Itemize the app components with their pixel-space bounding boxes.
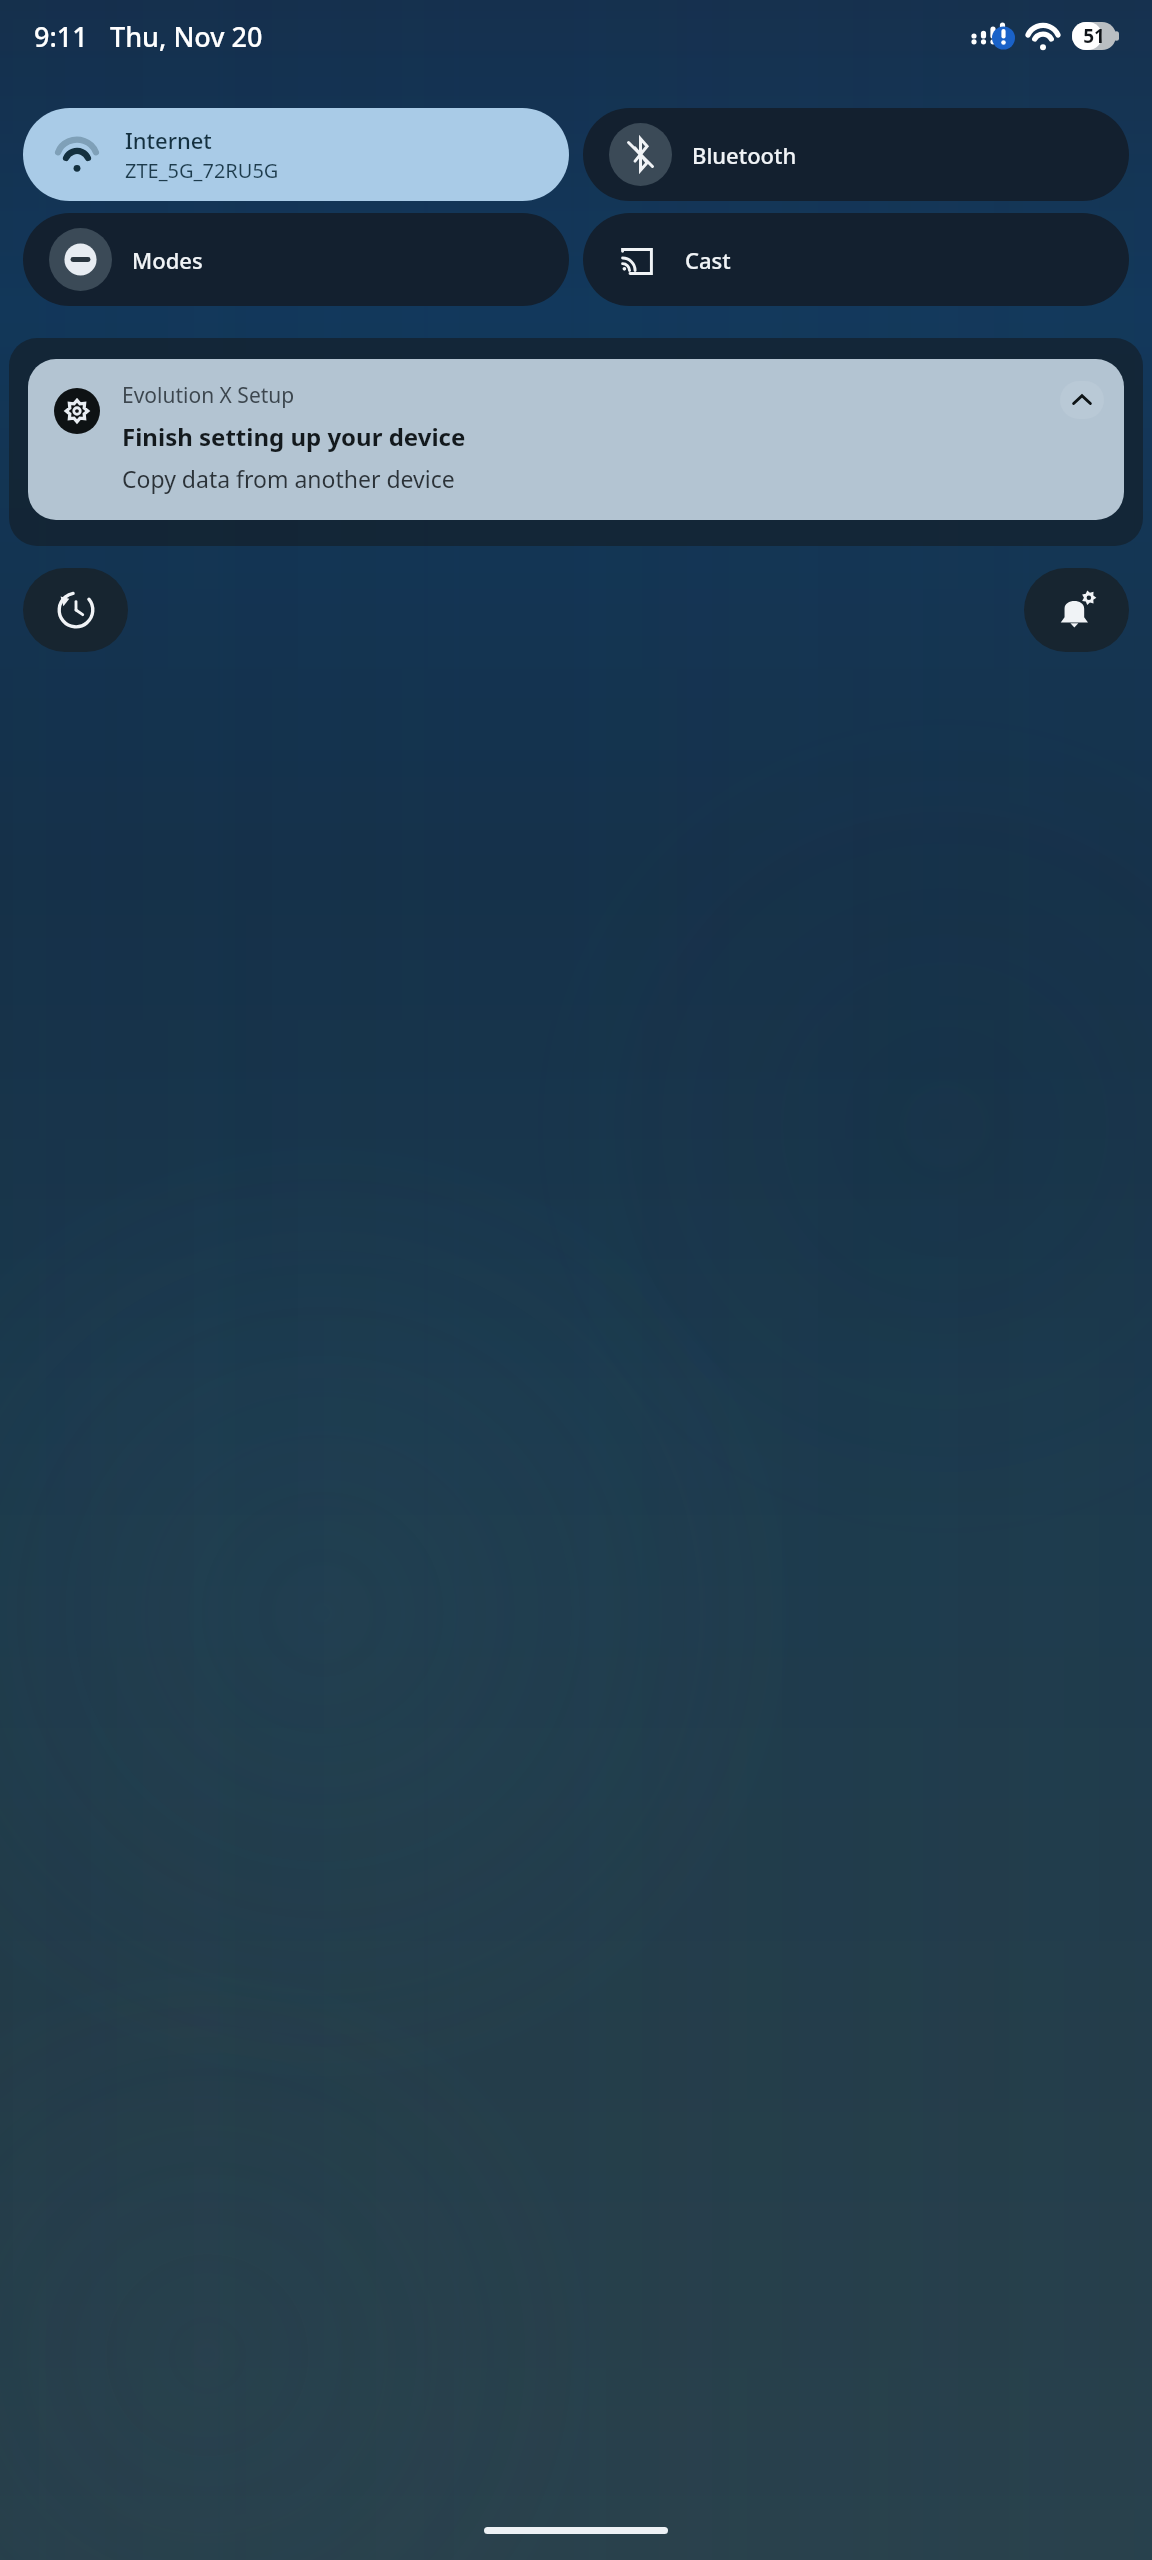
staticText: Thu, Nov 20 [110,18,263,55]
button[interactable]: Notification history [23,568,128,652]
button[interactable]: Bluetooth [583,108,1129,201]
button[interactable]: Collapse notification [1060,381,1104,419]
button[interactable]: Internet [23,108,569,201]
button[interactable]: Evolution X Setup [28,359,1124,520]
staticText: 9:11 [34,18,88,55]
staticText: Modes [132,245,203,275]
button[interactable]: Notification settings [1024,568,1129,652]
staticText: 51 [1072,23,1116,49]
staticText: Internet [125,125,212,155]
button[interactable]: Modes [23,213,569,306]
staticText: Copy data from another device [122,463,455,494]
staticText: Finish setting up your device [122,420,466,453]
button[interactable]: Cast [583,213,1129,306]
staticText: ZTE_5G_72RU5G [125,157,279,184]
staticText: Bluetooth [692,140,797,170]
staticText: Cast [685,245,731,275]
staticText: Evolution X Setup [122,381,295,410]
